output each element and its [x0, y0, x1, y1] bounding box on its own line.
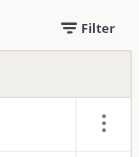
staticText: Filter [81, 19, 116, 37]
button[interactable]: Filter [57, 17, 116, 39]
button[interactable]: More options [92, 109, 116, 139]
